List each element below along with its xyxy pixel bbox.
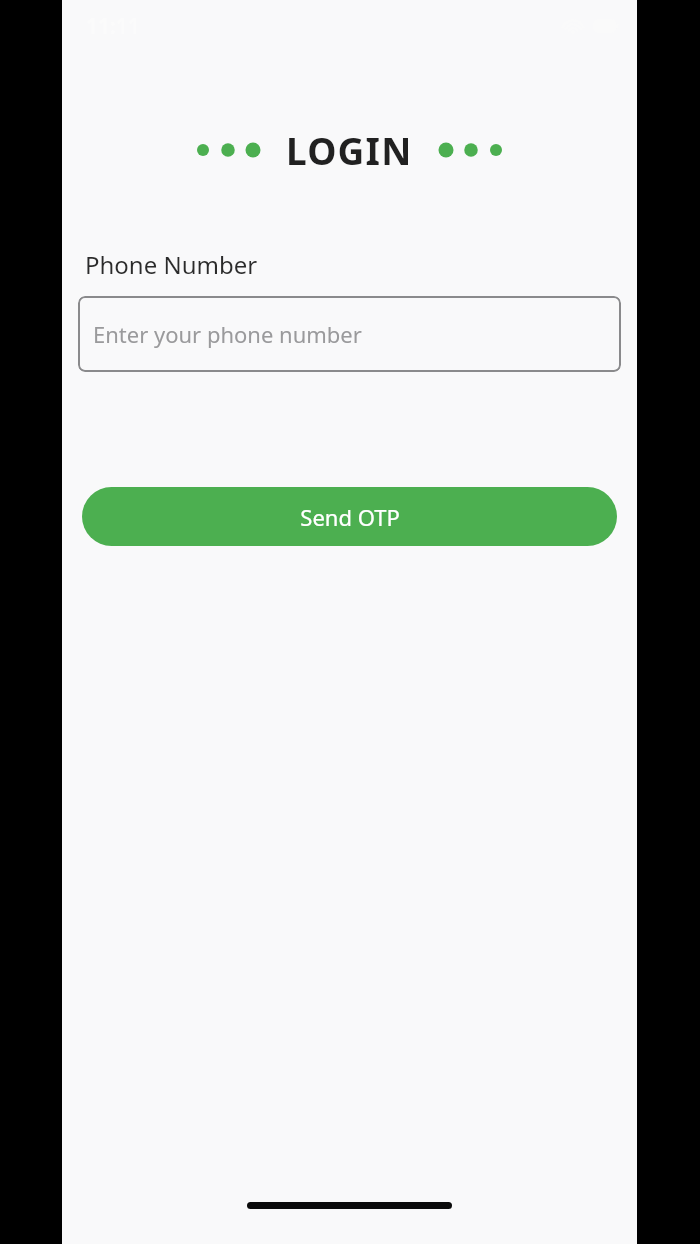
staticText: Send OTP <box>300 502 400 532</box>
staticText: LOGIN <box>286 125 413 175</box>
staticText: Enter your phone number <box>93 319 362 349</box>
button[interactable]: Send OTP <box>82 487 617 546</box>
staticText: Phone Number <box>85 248 258 281</box>
button[interactable]: Enter your phone number <box>78 296 621 372</box>
